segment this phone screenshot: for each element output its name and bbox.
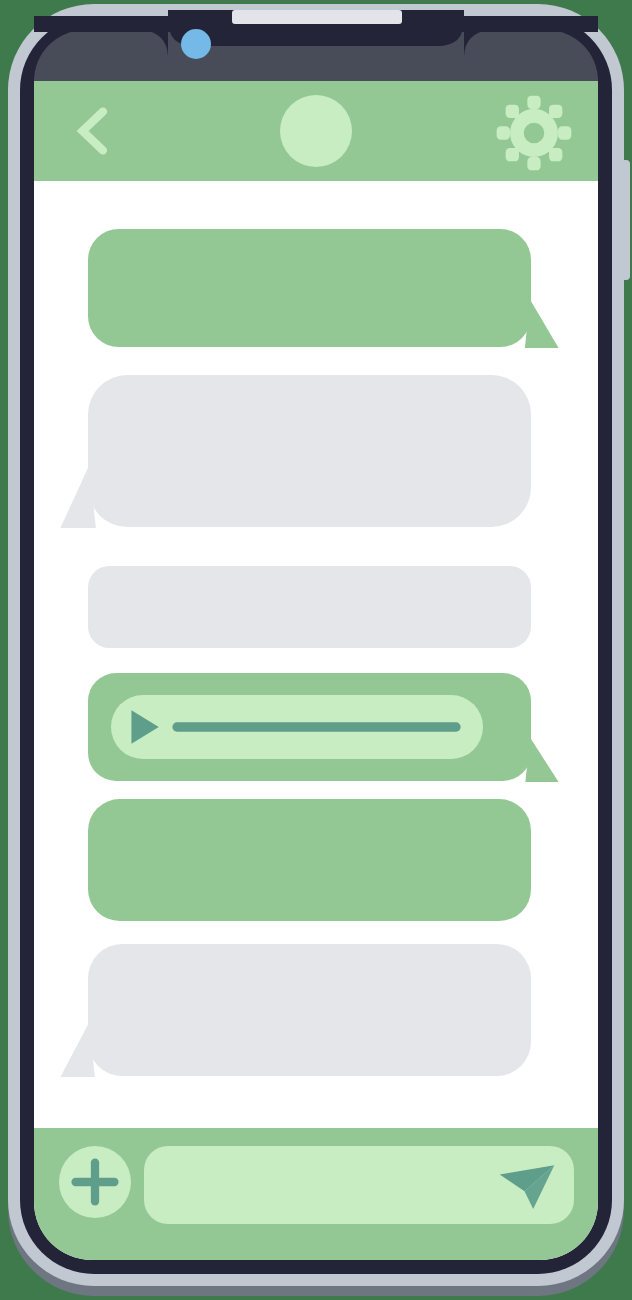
- button[interactable]: Add attachment: [59, 1146, 131, 1218]
- button[interactable]: [88, 229, 561, 347]
- button[interactable]: Send: [144, 1146, 574, 1224]
- button[interactable]: [88, 799, 561, 921]
- button[interactable]: Play voice message: [111, 695, 483, 759]
- button[interactable]: [58, 375, 531, 527]
- button[interactable]: Settings: [496, 95, 572, 171]
- button[interactable]: [88, 566, 561, 648]
- button[interactable]: [58, 944, 531, 1076]
- button[interactable]: Back: [52, 95, 124, 167]
- button[interactable]: Contact avatar: [280, 95, 352, 167]
- button[interactable]: Play voice message: [88, 673, 561, 781]
- button[interactable]: Send: [496, 1159, 558, 1211]
